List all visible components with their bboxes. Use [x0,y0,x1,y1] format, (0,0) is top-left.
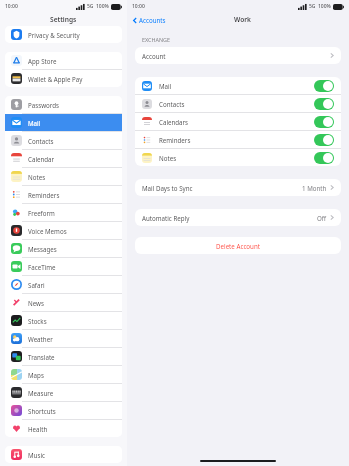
staticText: Reminders [28,191,60,199]
button[interactable]: Delete Account [135,237,341,254]
staticText: 5G [309,3,316,10]
button[interactable]: Mail [135,77,341,94]
button[interactable]: Toggle [314,152,334,164]
button[interactable]: Mail [5,114,122,131]
staticText: Measure [28,389,54,397]
button[interactable]: Toggle [314,116,334,128]
button[interactable]: Back to Accounts [133,16,170,24]
staticText: Contacts [28,137,54,145]
button[interactable]: Freeform [5,204,122,221]
button[interactable]: Shortcuts [5,402,122,419]
button[interactable]: Weather [5,330,122,347]
staticText: Off [317,214,327,222]
staticText: EXCHANGE [142,36,170,43]
button[interactable]: FaceTime [5,258,122,275]
button[interactable]: Messages [5,240,122,257]
staticText: Settings [50,15,77,24]
staticText: 10:00 [5,3,18,10]
button[interactable]: App Store [5,52,122,69]
button[interactable]: Mail Days to Sync [135,179,341,196]
staticText: FaceTime [28,263,56,271]
staticText: Notes [159,154,177,162]
staticText: 5G [87,3,94,10]
staticText: 10:00 [132,3,145,10]
staticText: App Store [28,57,57,65]
staticText: Maps [28,371,44,379]
staticText: Translate [28,353,55,361]
button[interactable]: Contacts [135,95,341,112]
button[interactable]: Toggle [314,98,334,110]
button[interactable]: Voice Memos [5,222,122,239]
button[interactable]: Translate [5,348,122,365]
button[interactable]: Calendar [5,150,122,167]
staticText: Work [234,15,251,24]
staticText: Freeform [28,209,55,217]
staticText: Mail Days to Sync [142,184,193,192]
staticText: Mail [28,119,41,127]
button[interactable]: Stocks [5,312,122,329]
button[interactable]: Calendars [135,113,341,130]
staticText: 100% [96,3,109,10]
button[interactable]: News [5,294,122,311]
button[interactable]: Notes [135,149,341,166]
button[interactable]: Toggle [314,134,334,146]
staticText: Stocks [28,317,47,325]
button[interactable]: Automatic Reply [135,209,341,226]
staticText: Calendars [159,118,189,126]
staticText: Safari [28,281,45,289]
button[interactable]: Account [135,47,341,64]
button[interactable]: Passwords [5,96,122,113]
staticText: Messages [28,245,57,253]
button[interactable]: Health [5,420,122,437]
button[interactable]: Safari [5,276,122,293]
staticText: Health [28,425,48,433]
staticText: News [28,299,44,307]
staticText: Account [142,52,166,60]
button[interactable]: Toggle [314,80,334,92]
button[interactable]: Contacts [5,132,122,149]
staticText: Shortcuts [28,407,56,415]
staticText: 100% [318,3,331,10]
staticText: Reminders [159,136,191,144]
button[interactable]: Reminders [135,131,341,148]
staticText: Passwords [28,101,59,109]
staticText: Accounts [139,16,166,24]
button[interactable]: Notes [5,168,122,185]
staticText: Calendar [28,155,55,163]
button[interactable]: Privacy & Security [5,26,122,43]
staticText: 1 Month [302,184,327,192]
staticText: Voice Memos [28,227,67,235]
staticText: Mail [159,82,172,90]
staticText: Music [28,451,45,459]
button[interactable]: Reminders [5,186,122,203]
staticText: Weather [28,335,53,343]
staticText: Contacts [159,100,185,108]
staticText: Wallet & Apple Pay [28,75,83,83]
staticText: Notes [28,173,46,181]
staticText: Privacy & Security [28,31,80,39]
button[interactable]: Wallet & Apple Pay [5,70,122,87]
button[interactable]: Measure [5,384,122,401]
button[interactable]: Maps [5,366,122,383]
staticText: Automatic Reply [142,214,190,222]
button[interactable]: Music [5,446,122,463]
staticText: Delete Account [216,242,260,250]
